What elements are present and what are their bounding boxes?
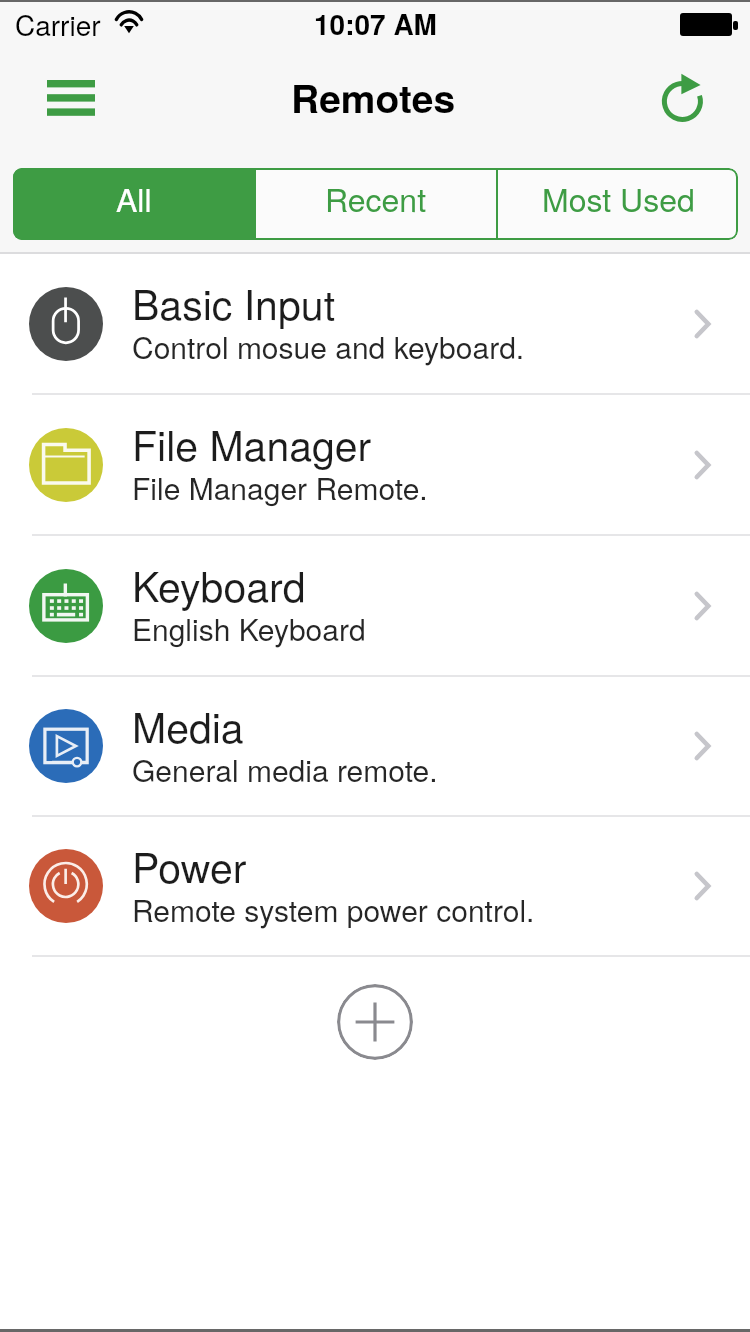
- staticText: Recent: [325, 175, 427, 221]
- button[interactable]: Add remote: [337, 984, 413, 1060]
- button[interactable]: Basic Input: [0, 254, 750, 393]
- staticText: Power: [132, 836, 247, 895]
- staticText: File Manager: [132, 414, 372, 473]
- button[interactable]: Menu: [20, 61, 121, 145]
- staticText: 10:07 AM: [314, 3, 437, 43]
- button[interactable]: Media: [0, 677, 750, 815]
- button[interactable]: Refresh: [642, 59, 727, 144]
- button[interactable]: Recent: [256, 168, 496, 240]
- staticText: Media: [132, 696, 244, 755]
- staticText: General media remote.: [132, 748, 438, 791]
- button[interactable]: Power: [0, 817, 750, 955]
- button[interactable]: Keyboard: [0, 536, 750, 675]
- staticText: Keyboard: [132, 555, 306, 614]
- staticText: Carrier: [15, 4, 101, 44]
- staticText: Remotes: [291, 69, 456, 125]
- button[interactable]: Most Used: [498, 168, 738, 240]
- staticText: Control mosue and keyboard.: [132, 325, 525, 368]
- staticText: English Keyboard: [132, 607, 366, 650]
- staticText: Most Used: [542, 175, 695, 221]
- staticText: File Manager Remote.: [132, 466, 428, 509]
- staticText: Remote system power control.: [132, 888, 535, 931]
- button[interactable]: File Manager: [0, 395, 750, 534]
- staticText: Basic Input: [132, 273, 336, 332]
- button[interactable]: All: [13, 168, 254, 240]
- staticText: All: [116, 175, 152, 221]
